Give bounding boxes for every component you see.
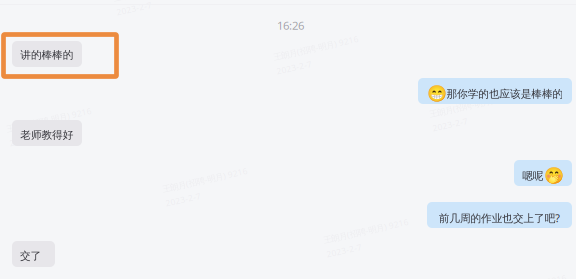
- button[interactable]: 😁: [418, 78, 572, 104]
- staticText: 16:26: [277, 18, 304, 33]
- staticText: 那你学的也应该是棒棒的: [446, 87, 563, 101]
- staticText: 王朗月(招聘-明月) 9216: [7, 114, 94, 125]
- staticText: 王朗月(招聘-明月) 9216: [430, 99, 517, 110]
- button[interactable]: 前几周的作业也交上了吧?: [427, 202, 572, 228]
- staticText: 🤭: [544, 167, 564, 185]
- staticText: 前几周的作业也交上了吧?: [439, 211, 560, 225]
- staticText: 😁: [426, 85, 446, 103]
- staticText: 嗯呢: [522, 169, 544, 183]
- staticText: 老师教得好: [20, 128, 74, 142]
- button[interactable]: 讲的棒棒的: [12, 41, 82, 67]
- button[interactable]: 交了: [12, 241, 55, 267]
- button[interactable]: 嗯呢: [514, 160, 572, 186]
- button[interactable]: 老师教得好: [12, 120, 82, 146]
- staticText: 讲的棒棒的: [20, 48, 74, 62]
- staticText: 交了: [20, 249, 42, 263]
- staticText: 2023-2-7: [7, 128, 43, 140]
